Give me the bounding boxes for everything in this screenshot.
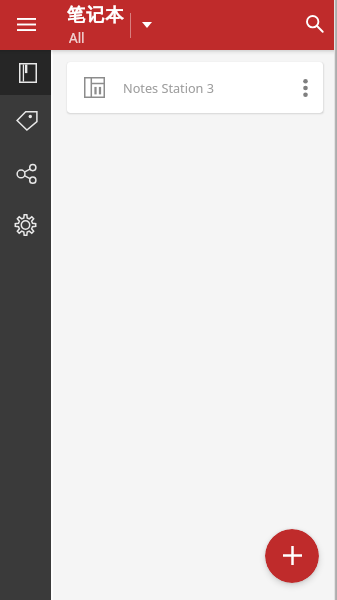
staticText: 笔记本	[67, 4, 125, 27]
button[interactable]: Create note	[265, 529, 319, 583]
button[interactable]: More options	[287, 62, 323, 113]
button[interactable]: Settings	[0, 199, 51, 251]
button[interactable]: Change notebook	[131, 0, 163, 50]
staticText: All	[69, 29, 85, 47]
button[interactable]: Notes Station 3	[67, 62, 323, 113]
button[interactable]: Tags	[0, 95, 51, 147]
staticText: Notes Station 3	[123, 79, 215, 96]
button[interactable]: Notebooks	[0, 50, 51, 95]
button[interactable]: Search	[289, 0, 337, 50]
button[interactable]: Shared	[0, 147, 51, 199]
button[interactable]: Menu	[0, 0, 52, 50]
